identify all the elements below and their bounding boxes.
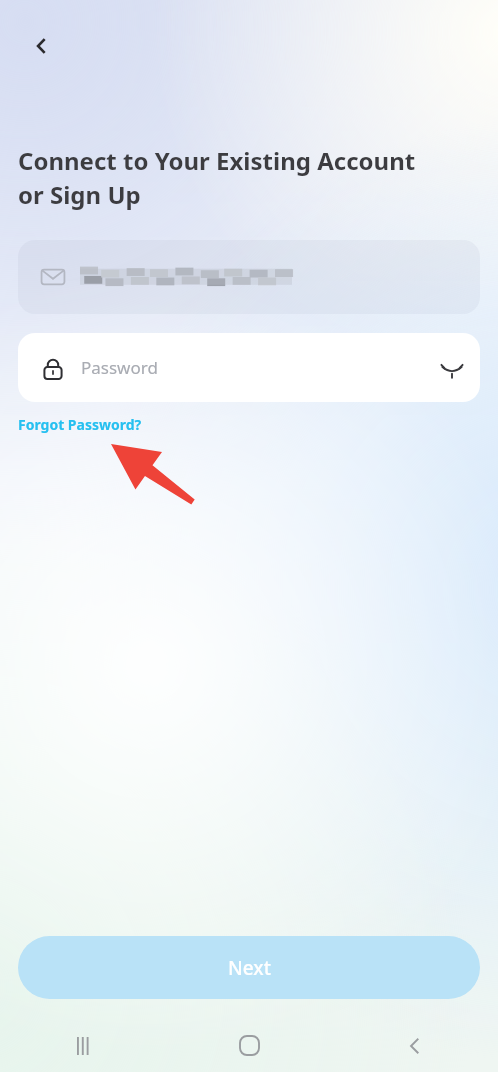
button[interactable]: Show password [430, 346, 474, 390]
staticText: Next [228, 955, 271, 981]
button[interactable]: Next [18, 936, 480, 999]
button[interactable]: Home [166, 1019, 332, 1072]
button[interactable] [18, 240, 480, 314]
staticText: Password [81, 356, 158, 379]
button[interactable]: Back [18, 22, 66, 70]
staticText: Forgot Password? [18, 415, 142, 434]
button[interactable]: Recent apps [0, 1019, 166, 1072]
button[interactable]: Forgot Password? [18, 415, 142, 434]
button[interactable]: Password [18, 333, 480, 402]
button[interactable]: Back [332, 1019, 498, 1072]
staticText: Connect to Your Existing Account or Sign… [18, 144, 416, 212]
